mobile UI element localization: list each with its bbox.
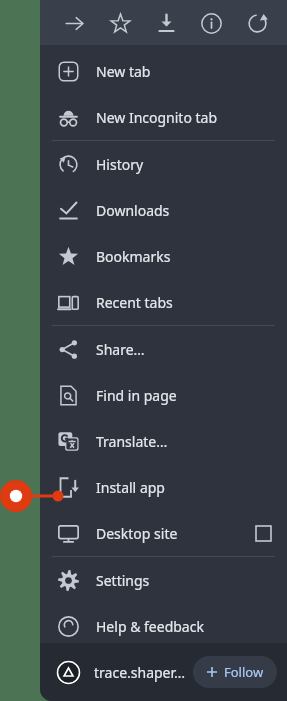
- staticText: Desktop site: [96, 524, 256, 543]
- button[interactable]: Find in page: [40, 372, 287, 418]
- button[interactable]: Forward: [54, 3, 94, 43]
- staticText: Translate…: [96, 432, 271, 451]
- button[interactable]: New tab: [40, 48, 287, 94]
- staticText: Follow: [224, 663, 264, 681]
- button[interactable]: Share…: [40, 326, 287, 372]
- staticText: trace.shaper…: [94, 663, 187, 682]
- button[interactable]: Follow: [193, 656, 277, 688]
- staticText: Find in page: [96, 386, 271, 405]
- staticText: New Incognito tab: [96, 108, 271, 127]
- button[interactable]: Bookmarks: [40, 233, 287, 279]
- staticText: Share…: [96, 340, 271, 359]
- button[interactable]: Settings: [40, 557, 287, 603]
- button[interactable]: Help & feedback: [40, 603, 287, 649]
- button[interactable]: History: [40, 141, 287, 187]
- staticText: Settings: [96, 571, 271, 590]
- button[interactable]: Install app: [40, 464, 287, 510]
- button[interactable]: New Incognito tab: [40, 94, 287, 140]
- staticText: Recent tabs: [96, 293, 271, 312]
- staticText: History: [96, 155, 271, 174]
- button[interactable]: trace.shaper…: [40, 643, 287, 701]
- staticText: Downloads: [96, 201, 271, 220]
- button[interactable]: Downloads: [40, 187, 287, 233]
- button[interactable]: Bookmark: [100, 3, 140, 43]
- button[interactable]: Translate…: [40, 418, 287, 464]
- button[interactable]: Desktop site: [40, 510, 287, 556]
- staticText: Help & feedback: [96, 617, 271, 636]
- button[interactable]: Download: [146, 3, 186, 43]
- staticText: New tab: [96, 62, 271, 81]
- button[interactable]: Page info: [191, 3, 231, 43]
- staticText: Bookmarks: [96, 247, 271, 266]
- button[interactable]: Reload: [237, 3, 277, 43]
- button[interactable]: Recent tabs: [40, 279, 287, 325]
- staticText: Install app: [96, 478, 271, 497]
